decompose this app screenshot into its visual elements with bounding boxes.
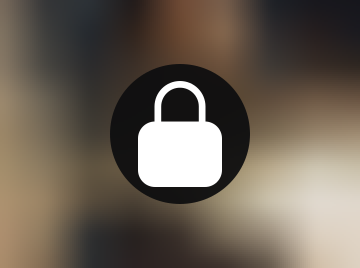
button[interactable]: Locked — [110, 64, 250, 204]
